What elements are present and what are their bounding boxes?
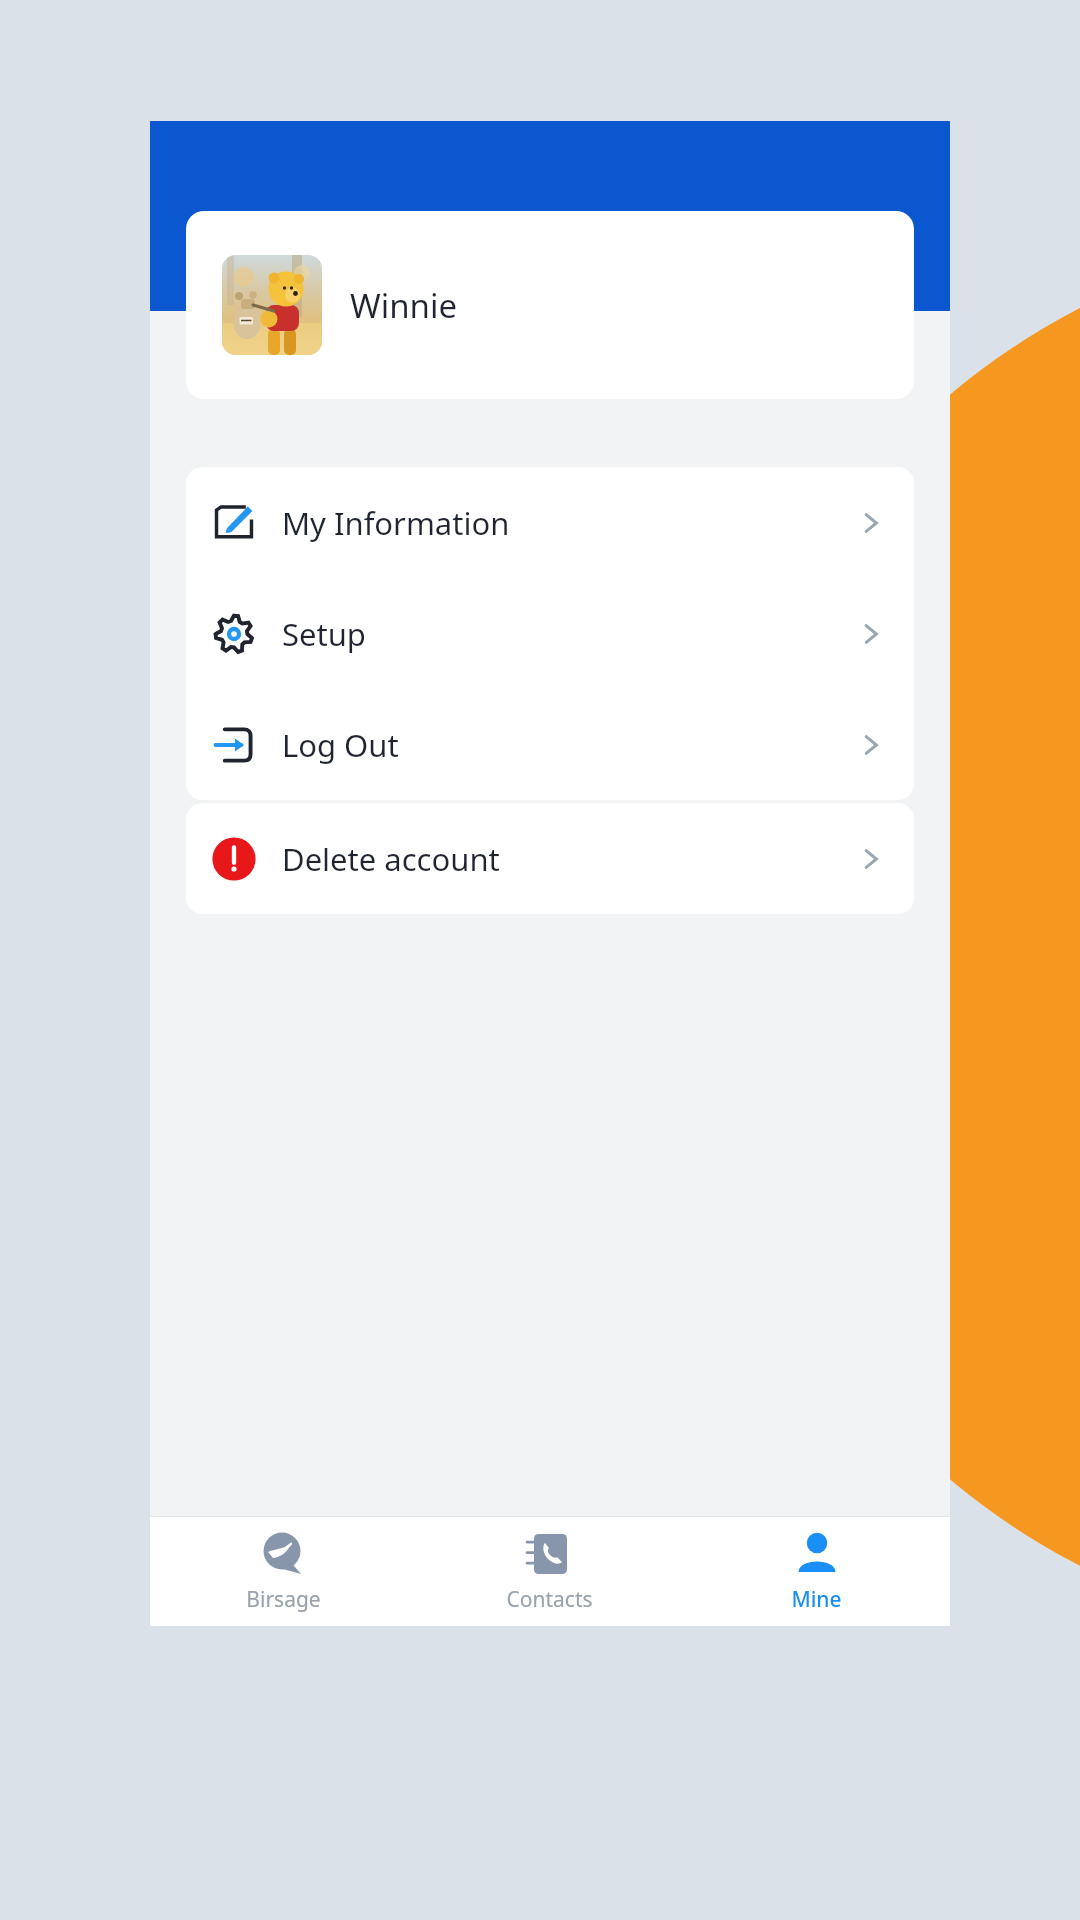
button[interactable]: Birsage <box>150 1516 416 1626</box>
other: Open <box>856 619 886 649</box>
button[interactable]: Mine <box>683 1516 950 1626</box>
button[interactable]: Log Out <box>186 689 914 800</box>
button[interactable]: My Information <box>186 467 914 578</box>
other: Birsage <box>258 1529 308 1579</box>
other: Mine <box>792 1529 842 1579</box>
button[interactable]: Profile photo <box>222 255 322 355</box>
other: Log Out <box>211 722 257 768</box>
button[interactable]: Setup <box>186 578 914 689</box>
other: Contacts <box>525 1529 575 1579</box>
staticText: My Information <box>282 502 510 544</box>
staticText: Log Out <box>282 724 399 766</box>
staticText: Winnie <box>350 283 458 328</box>
staticText: Setup <box>282 613 366 655</box>
button[interactable]: Delete account <box>186 803 914 914</box>
other: Delete account <box>211 836 257 882</box>
staticText: Delete account <box>282 838 500 880</box>
other: Open <box>856 730 886 760</box>
staticText: Birsage <box>246 1585 321 1614</box>
other: Open <box>856 844 886 874</box>
other: My Information <box>211 500 257 546</box>
button[interactable]: Profile photo <box>186 211 914 399</box>
staticText: Contacts <box>506 1585 593 1614</box>
staticText: Mine <box>791 1585 842 1614</box>
other: Open <box>856 508 886 538</box>
other: Setup <box>211 611 257 657</box>
button[interactable]: Contacts <box>416 1516 683 1626</box>
